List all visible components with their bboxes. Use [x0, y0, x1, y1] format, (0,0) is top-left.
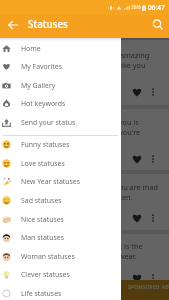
staticText: 06:47 — [148, 3, 165, 12]
staticText: I have got a lot of very good and amazin… — [7, 50, 162, 70]
staticText: My Gallery — [21, 81, 56, 90]
staticText: New Year statuses — [21, 177, 81, 186]
staticText: Home — [21, 44, 41, 53]
button[interactable]: Favorite — [131, 212, 143, 223]
button[interactable]: Love statuses — [0, 154, 121, 173]
staticText: Love statuses — [21, 159, 65, 168]
staticText: Man statuses — [21, 233, 65, 242]
button[interactable]: A beautiful smile and a kind heart is th… — [0, 234, 169, 290]
staticText: Funny statuses — [21, 140, 70, 149]
staticText: Woman statuses — [21, 252, 75, 261]
button[interactable]: More options — [148, 273, 158, 283]
button[interactable]: More options — [148, 154, 158, 164]
button[interactable]: Woman statuses — [0, 247, 121, 266]
button[interactable]: Hot keywords — [0, 94, 121, 113]
staticText: Never make any promise when you are mad … — [7, 182, 162, 202]
staticText: Send your status — [21, 118, 76, 127]
button[interactable]: Favorite — [131, 86, 143, 97]
staticText: 28% — [131, 4, 141, 11]
button[interactable]: More options — [148, 213, 158, 223]
button[interactable]: My Gallery — [0, 76, 121, 95]
button[interactable]: Nice statuses — [0, 210, 121, 229]
button[interactable]: Back — [6, 18, 20, 32]
button[interactable]: Man statuses — [0, 228, 121, 247]
button[interactable]: Never make any promise when you are mad … — [0, 174, 169, 230]
button[interactable]: My Favorites — [0, 57, 121, 76]
button[interactable]: Favorite — [131, 153, 143, 164]
button[interactable]: Clever statuses — [0, 265, 121, 284]
staticText: Nice statuses — [21, 215, 64, 224]
staticText: A beautiful smile and a kind heart is th… — [7, 241, 162, 261]
button[interactable]: I have got a lot of very good and amazin… — [0, 40, 169, 105]
staticText: SPONSORED AD — [128, 284, 169, 290]
button[interactable]: Life statuses — [0, 284, 121, 300]
button[interactable]: New Year statuses — [0, 172, 121, 191]
button[interactable]: Funny statuses — [0, 135, 121, 154]
button[interactable]: Sad statuses — [0, 191, 121, 210]
button[interactable]: Every single moment spent with you is me… — [0, 109, 169, 170]
button[interactable]: SPONSORED AD — [0, 280, 169, 300]
staticText: My Favorites — [21, 62, 62, 71]
staticText: Hot keywords — [21, 99, 66, 108]
staticText: Every single moment spent with you is me… — [7, 117, 162, 137]
staticText: Life statuses — [21, 289, 62, 298]
staticText: Sad statuses — [21, 196, 62, 205]
staticText: Clever statuses — [21, 270, 70, 279]
button[interactable]: Send your status — [0, 113, 121, 132]
button[interactable]: Home — [0, 39, 121, 58]
staticText: Statuses — [28, 18, 68, 31]
button[interactable]: Favorite — [131, 272, 143, 283]
button[interactable]: More options — [148, 87, 158, 97]
button[interactable]: Search — [151, 18, 165, 32]
